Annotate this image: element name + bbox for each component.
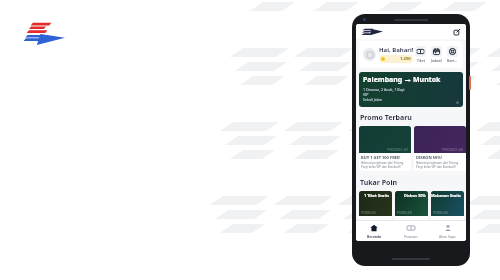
staticText: POIN #1 (361, 210, 376, 215)
staticText: Palembang (363, 75, 403, 85)
staticText: Jadwal (431, 58, 442, 63)
staticText: PROMO #2 (442, 147, 464, 152)
button[interactable]: 1 Tiket Gratis (359, 191, 392, 220)
staticText: Sekali Jalan (363, 97, 382, 102)
staticText: POIN #3 (433, 210, 448, 215)
staticText: BUY 1 GET 100 FREE! (361, 155, 401, 160)
staticText: Akun Saya (439, 234, 456, 239)
staticText: Nikmati perjalanan dari Pulang Pergi kel… (361, 161, 409, 169)
button[interactable]: Jadwal (430, 45, 443, 64)
staticText: POIN #2 (397, 210, 412, 215)
staticText: Diskon 30% (404, 193, 426, 198)
button[interactable]: Hai, Bahari! (359, 41, 463, 68)
staticText: 1.250 (400, 56, 411, 62)
staticText: DISKON 50%! (416, 155, 443, 160)
button[interactable]: Diskon 30% (395, 191, 428, 220)
staticText: 1 Dewasa, 2 Anak, 1 Bayi (363, 87, 405, 92)
button[interactable]: Palembang (359, 72, 463, 107)
staticText: Bantuan (447, 58, 458, 63)
staticText: Hai, Bahari! (379, 46, 414, 54)
staticText: Tiket (417, 58, 425, 63)
staticText: VIP (363, 92, 369, 97)
button[interactable]: Tiket (414, 45, 427, 64)
staticText: Beranda (367, 234, 382, 239)
staticText: Promo Terbaru (360, 113, 412, 123)
button[interactable]: Share (452, 27, 461, 36)
button[interactable]: PROMO #2 (414, 126, 466, 171)
staticText: Tukar Poin (360, 178, 398, 188)
staticText: Pesanan (404, 234, 418, 239)
button[interactable]: Pesanan (392, 221, 429, 241)
staticText: Makanan Gratis (431, 193, 462, 198)
button[interactable]: Akun Saya (429, 221, 466, 241)
button[interactable]: Bantuan (446, 45, 459, 64)
button[interactable]: Beranda (356, 221, 392, 241)
staticText: Nikmati perjalanan dari Pulang Pergi kel… (416, 161, 464, 169)
staticText: Muntok (413, 75, 441, 85)
staticText: 1 Tiket Gratis (364, 193, 390, 198)
button[interactable]: PROMO #1 (359, 126, 411, 171)
staticText: PROMO #1 (387, 147, 409, 152)
button[interactable]: Makanan Gratis (431, 191, 464, 220)
